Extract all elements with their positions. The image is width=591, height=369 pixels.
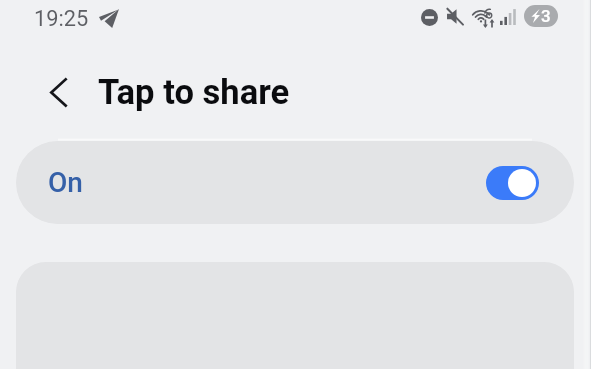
button[interactable]: On — [16, 141, 574, 224]
button[interactable]: Back — [35, 69, 81, 115]
staticText: Tap to share — [98, 72, 290, 113]
staticText: 3 — [541, 6, 551, 26]
staticText: On — [48, 166, 83, 199]
button[interactable]: Tap to share, on — [486, 166, 539, 200]
staticText: 19:25 — [34, 6, 89, 32]
